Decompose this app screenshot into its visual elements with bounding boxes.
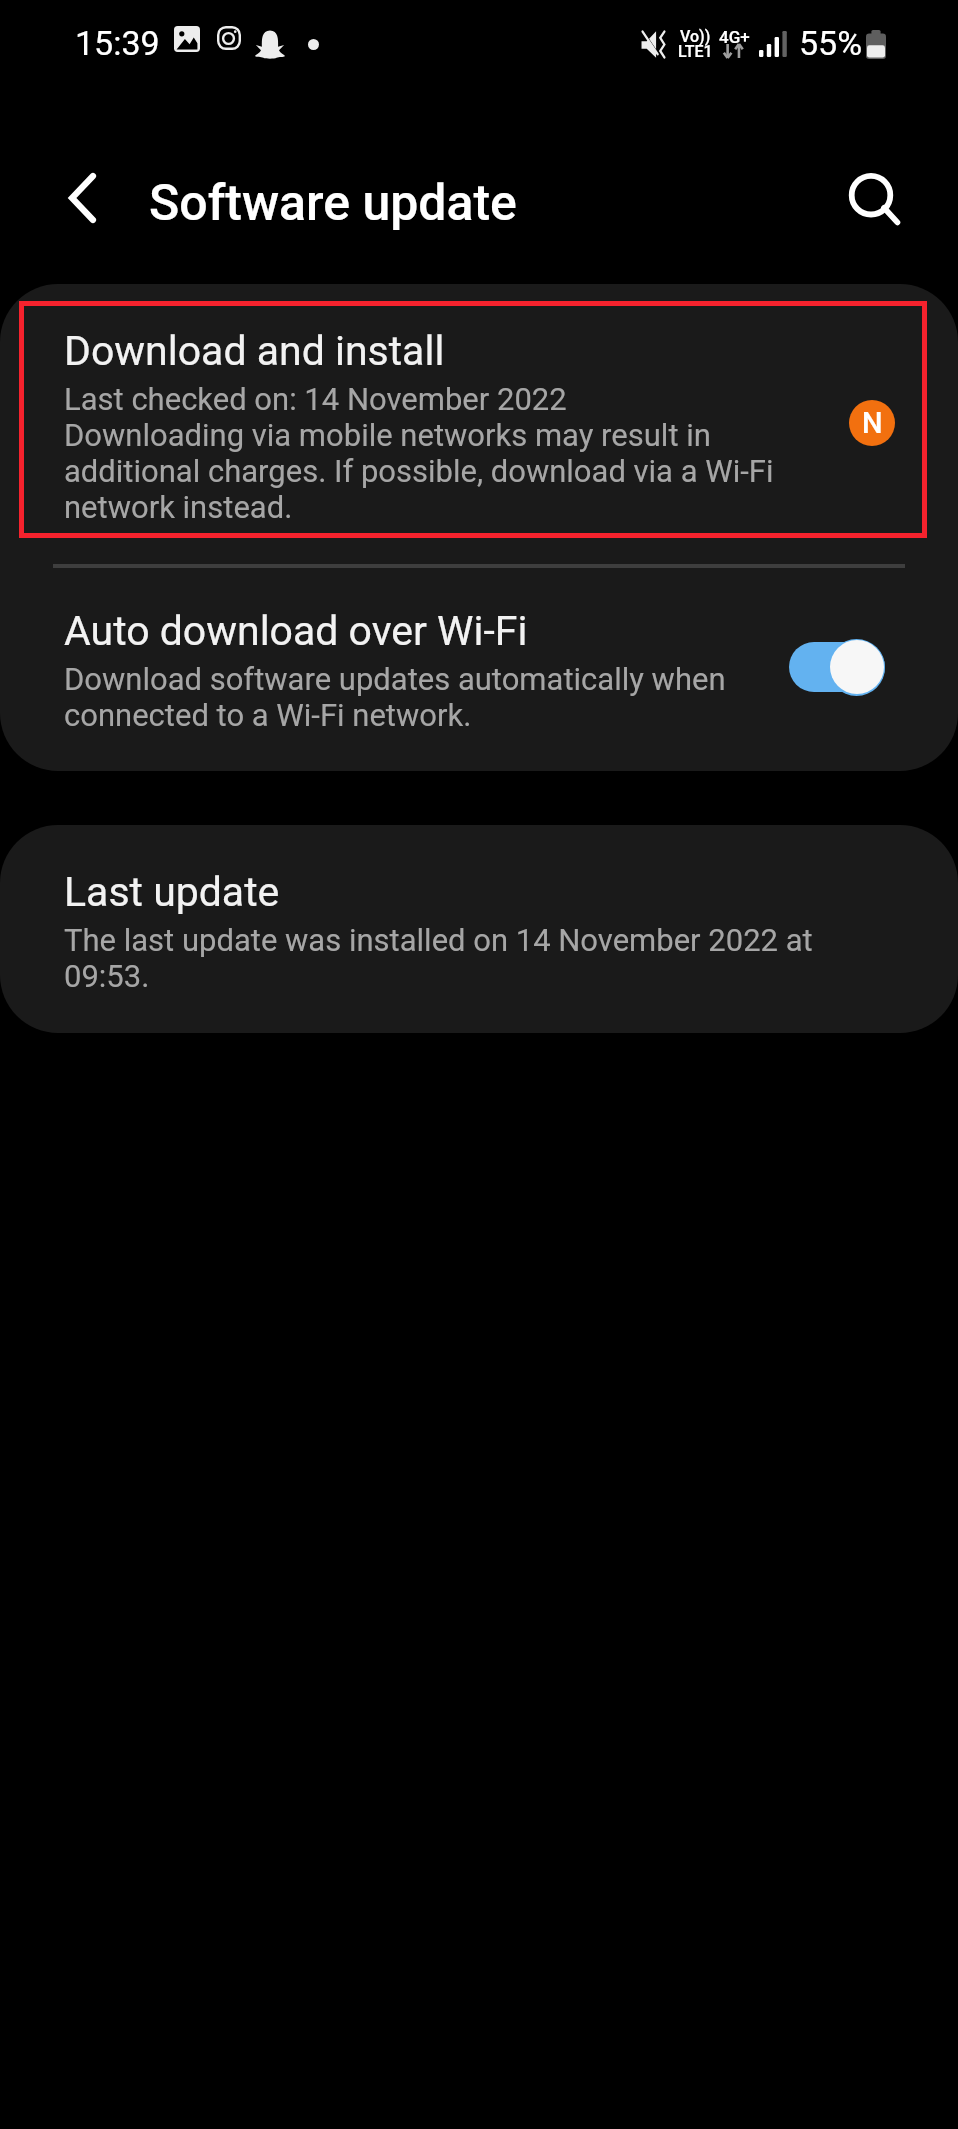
- staticText: Last update: [64, 868, 280, 916]
- staticText: The last update was installed on 14 Nove…: [64, 922, 898, 994]
- staticText: Download and install: [64, 327, 445, 375]
- staticText: Auto download over Wi-Fi: [64, 607, 528, 655]
- button[interactable]: Last update: [0, 825, 958, 1033]
- staticText: Vo)): [680, 27, 711, 46]
- staticText: LTE1: [678, 42, 713, 61]
- button[interactable]: Download and install: [0, 284, 958, 564]
- staticText: Download software updates automatically …: [64, 661, 764, 733]
- staticText: N: [862, 406, 883, 440]
- staticText: 15:39: [75, 23, 160, 63]
- button[interactable]: [789, 638, 885, 696]
- staticText: Last checked on: 14 November 2022 Downlo…: [64, 381, 792, 525]
- staticText: 55%: [799, 23, 863, 63]
- button[interactable]: Auto download over Wi-Fi: [0, 568, 958, 771]
- button[interactable]: Search: [833, 159, 917, 243]
- staticText: Software update: [149, 174, 517, 233]
- button[interactable]: Navigate up: [40, 156, 124, 240]
- staticText: 4G+: [719, 27, 750, 47]
